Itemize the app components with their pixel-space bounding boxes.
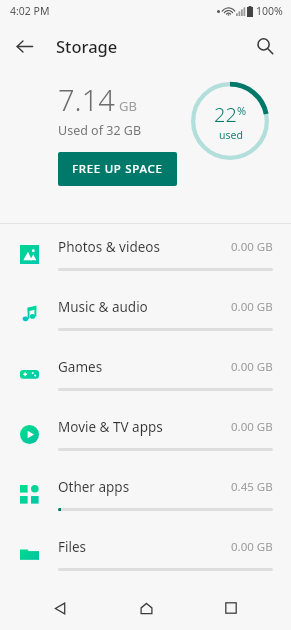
staticText: 0.00 GB — [231, 299, 273, 315]
button[interactable]: Back — [4, 26, 44, 66]
button[interactable]: Other apps — [0, 464, 291, 524]
button[interactable]: Recent apps — [205, 586, 257, 630]
button[interactable]: Back — [34, 586, 86, 630]
staticText: Photos & videos — [58, 238, 231, 256]
button[interactable]: Games — [0, 344, 291, 404]
staticText: % — [237, 103, 247, 118]
staticText: 7.14 — [58, 80, 115, 119]
button[interactable]: Photos & videos — [0, 224, 291, 284]
staticText: 0.00 GB — [231, 419, 273, 435]
staticText: Music & audio — [58, 298, 231, 316]
staticText: 0.45 GB — [231, 479, 273, 495]
staticText: FREE UP SPACE — [72, 161, 163, 177]
button[interactable]: Music & audio — [0, 284, 291, 344]
button[interactable]: Files — [0, 524, 291, 584]
staticText: Other apps — [58, 478, 231, 496]
button[interactable]: Movie & TV apps — [0, 404, 291, 464]
staticText: Movie & TV apps — [58, 418, 231, 436]
staticText: 100% — [256, 4, 283, 18]
staticText: 4:02 PM — [10, 4, 50, 18]
button[interactable]: Search — [245, 26, 285, 66]
button[interactable]: FREE UP SPACE — [58, 152, 177, 186]
staticText: Files — [58, 538, 231, 556]
staticText: 22 — [214, 101, 237, 128]
staticText: GB — [119, 97, 137, 115]
staticText: Used of 32 GB — [58, 122, 142, 139]
staticText: 0.00 GB — [231, 239, 273, 255]
staticText: Storage — [56, 35, 118, 57]
staticText: 0.00 GB — [231, 539, 273, 555]
button[interactable]: Home — [120, 586, 172, 630]
staticText: 0.00 GB — [231, 359, 273, 375]
staticText: Games — [58, 358, 231, 376]
staticText: used — [219, 128, 243, 142]
